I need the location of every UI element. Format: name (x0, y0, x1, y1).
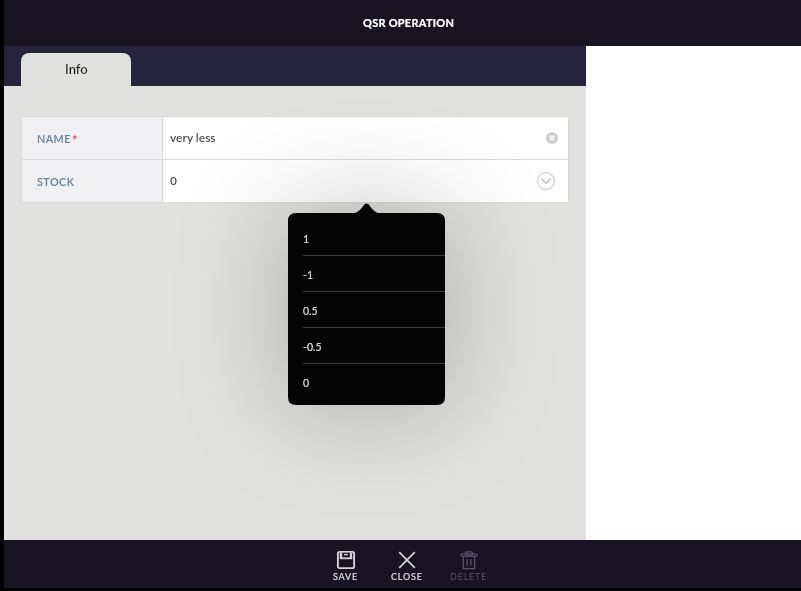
staticText: -0.5 (303, 341, 322, 354)
button[interactable]: 0 (288, 365, 445, 401)
button[interactable]: Clear text (542, 128, 562, 148)
staticText: 0 (303, 377, 310, 390)
staticText: DELETE (450, 571, 488, 582)
staticText: NAME (37, 132, 71, 145)
button[interactable]: CLOSE (376, 540, 438, 588)
button[interactable]: SAVE (314, 540, 376, 588)
staticText: Info (65, 61, 88, 77)
button[interactable]: 0.5 (288, 293, 445, 329)
button[interactable]: -0.5 (288, 329, 445, 365)
staticText: 0 (170, 173, 177, 187)
staticText: STOCK (37, 175, 75, 188)
staticText: QSR OPERATION (363, 16, 455, 29)
button[interactable]: very less (163, 117, 568, 159)
staticText: very less (170, 130, 216, 144)
staticText: * (72, 132, 78, 148)
button[interactable]: Open list (535, 170, 557, 192)
staticText: SAVE (333, 571, 358, 582)
staticText: CLOSE (391, 571, 423, 582)
button[interactable]: 0 (163, 160, 568, 202)
button[interactable]: 1 (288, 221, 445, 257)
button[interactable]: -1 (288, 257, 445, 293)
staticText: -1 (303, 269, 313, 282)
button[interactable]: Info (21, 53, 131, 86)
staticText: 0.5 (303, 305, 318, 318)
button[interactable]: DELETE (438, 540, 500, 588)
staticText: 1 (303, 233, 310, 246)
